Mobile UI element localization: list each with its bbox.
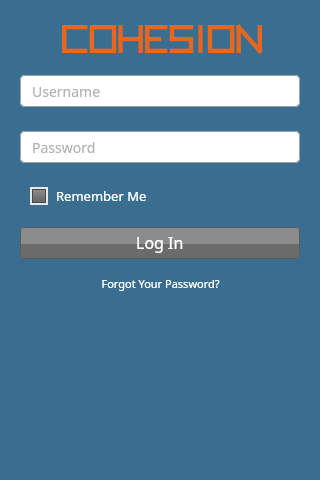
staticText: Remember Me bbox=[56, 187, 147, 205]
button[interactable]: Forgot Your Password? bbox=[95, 274, 226, 293]
staticText: Log In bbox=[136, 232, 184, 254]
staticText: Username bbox=[32, 82, 101, 101]
button[interactable]: Username bbox=[20, 75, 300, 107]
button[interactable]: Remember Me bbox=[30, 185, 155, 207]
button[interactable]: Log In bbox=[20, 227, 300, 259]
button[interactable]: Password bbox=[20, 131, 300, 163]
other: Cohesion logo bbox=[62, 25, 262, 53]
staticText: Password bbox=[32, 138, 96, 157]
